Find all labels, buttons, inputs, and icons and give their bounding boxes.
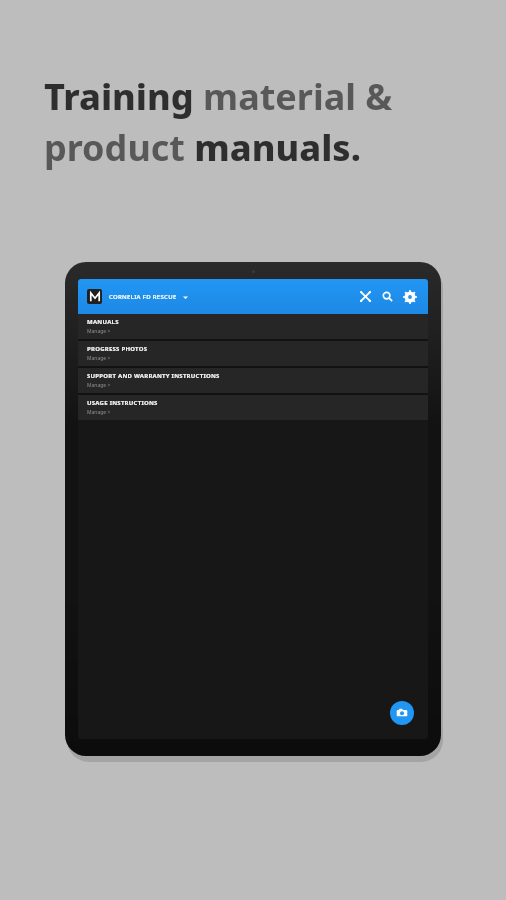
staticText: SUPPORT AND WARRANTY INSTRUCTIONS — [87, 372, 220, 380]
button[interactable]: Search — [378, 287, 397, 306]
button[interactable]: CORNELIA FD RESCUE — [109, 293, 188, 301]
staticText: Manage > — [87, 328, 111, 335]
staticText: PROGRESS PHOTOS — [87, 345, 148, 353]
button[interactable]: SUPPORT AND WARRANTY INSTRUCTIONS — [78, 368, 428, 393]
staticText: MANUALS — [87, 318, 119, 326]
button[interactable]: App logo — [87, 289, 102, 304]
button[interactable]: Settings — [400, 287, 419, 306]
staticText: CORNELIA FD RESCUE — [109, 293, 177, 301]
staticText: Manage > — [87, 409, 111, 416]
button[interactable]: MANUALS — [78, 314, 428, 339]
button[interactable]: PROGRESS PHOTOS — [78, 341, 428, 366]
button[interactable]: USAGE INSTRUCTIONS — [78, 395, 428, 420]
staticText: Training material & — [44, 72, 393, 121]
staticText: product manuals. — [44, 123, 361, 172]
staticText: Manage > — [87, 355, 111, 362]
button[interactable]: Shuffle — [356, 287, 375, 306]
staticText: USAGE INSTRUCTIONS — [87, 399, 158, 407]
button[interactable]: Add photo — [390, 701, 414, 725]
staticText: Manage > — [87, 382, 111, 389]
